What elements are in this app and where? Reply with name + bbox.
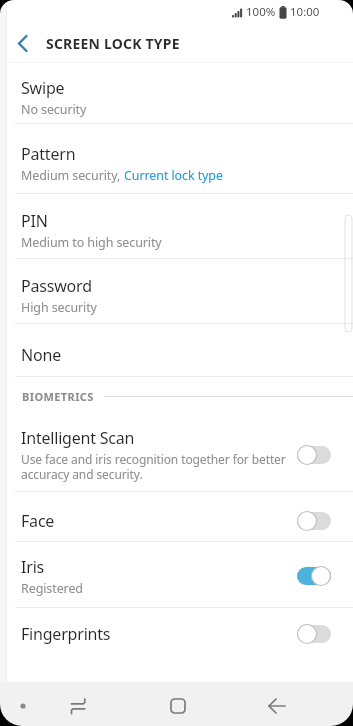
staticText: Registered bbox=[21, 580, 83, 597]
staticText: SCREEN LOCK TYPE bbox=[46, 34, 180, 53]
staticText: 10:00 bbox=[290, 4, 320, 20]
staticText: BIOMETRICS bbox=[22, 389, 94, 404]
staticText: High security bbox=[21, 299, 97, 316]
staticText: Medium to high security bbox=[21, 234, 162, 251]
staticText: Fingerprints bbox=[21, 623, 111, 645]
staticText: PIN bbox=[21, 210, 48, 232]
staticText: Intelligent Scan bbox=[21, 427, 135, 449]
staticText: Face bbox=[21, 510, 55, 532]
staticText: Use face and iris recognition together f… bbox=[21, 451, 286, 483]
staticText: Medium security, bbox=[21, 167, 124, 184]
staticText: None bbox=[21, 344, 61, 366]
staticText: 100% bbox=[246, 4, 276, 20]
staticText: Current lock type bbox=[124, 167, 223, 184]
staticText: Password bbox=[21, 275, 92, 297]
staticText: Iris bbox=[21, 556, 45, 578]
staticText: No security bbox=[21, 101, 87, 118]
staticText: Swipe bbox=[21, 77, 65, 99]
staticText: Pattern bbox=[21, 143, 76, 165]
